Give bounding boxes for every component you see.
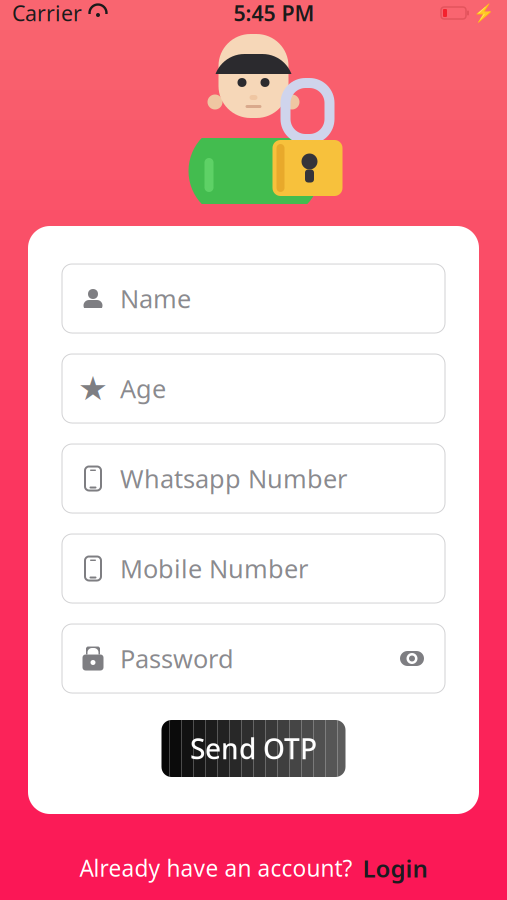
staticText: ⚡	[473, 3, 495, 23]
button[interactable]: Name	[28, 264, 479, 333]
staticText: 5:45 PM	[233, 0, 314, 27]
button[interactable]: Whatsapp Number	[28, 444, 479, 513]
staticText: Send OTP	[190, 730, 317, 767]
staticText: Password	[120, 642, 234, 675]
staticText: Already have an account?	[79, 853, 352, 883]
staticText: Carrier	[12, 0, 82, 27]
button[interactable]: Send OTP	[161, 720, 345, 777]
button[interactable]: ★	[28, 354, 479, 423]
staticText: Login	[362, 852, 427, 884]
staticText: Whatsapp Number	[120, 462, 347, 495]
staticText: ★	[78, 370, 108, 407]
staticText: Mobile Number	[120, 552, 308, 585]
staticText: Name	[120, 282, 191, 315]
staticText: Age	[120, 372, 166, 405]
button[interactable]: Password	[28, 624, 479, 693]
button[interactable]: Login	[362, 852, 427, 884]
button[interactable]: Mobile Number	[28, 534, 479, 603]
